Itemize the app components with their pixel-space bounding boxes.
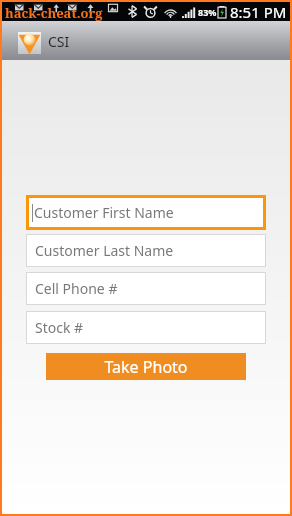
staticText: Customer Last Name	[35, 241, 174, 260]
staticText: Take Photo	[104, 356, 188, 378]
button[interactable]: Take Photo	[46, 353, 246, 380]
staticText: Stock #	[35, 318, 84, 337]
staticText: hack-cheat.org	[5, 4, 103, 22]
staticText: Customer First Name	[34, 203, 174, 222]
button[interactable]: Customer First Name	[26, 195, 266, 230]
button[interactable]: Cell Phone #	[26, 272, 266, 305]
button[interactable]: Stock #	[26, 311, 266, 344]
staticText: CSI	[48, 32, 70, 51]
staticText: Cell Phone #	[35, 279, 118, 298]
staticText: 83%	[198, 6, 217, 18]
staticText: 8:51 PM	[230, 2, 287, 21]
button[interactable]: Customer Last Name	[26, 234, 266, 267]
